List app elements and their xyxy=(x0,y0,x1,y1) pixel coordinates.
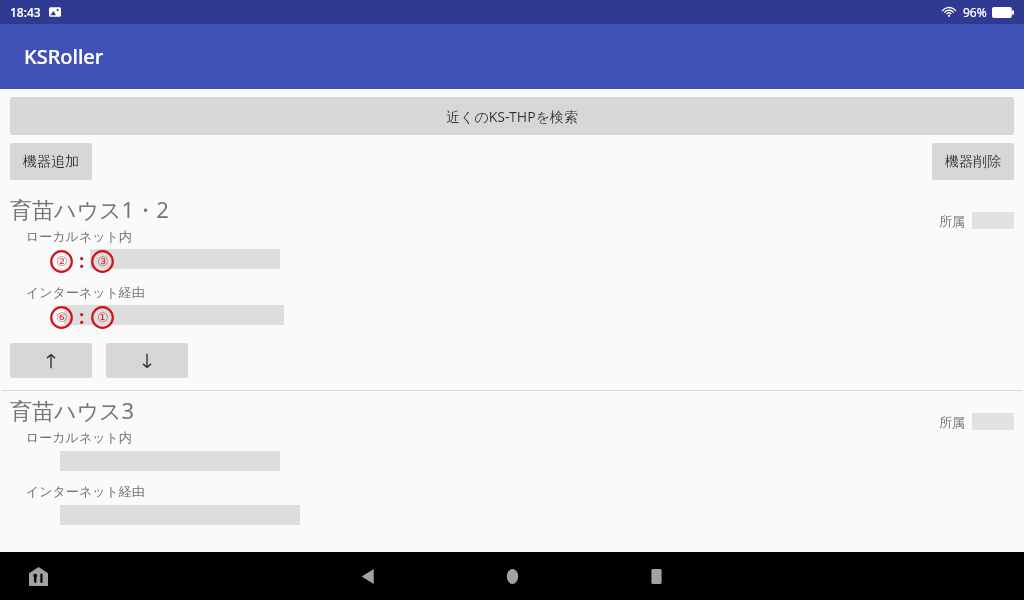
staticText: 所属 xyxy=(939,414,965,430)
button[interactable]: Recent apps xyxy=(634,554,678,598)
staticText: 機器削除 xyxy=(945,153,1001,171)
staticText: 機器追加 xyxy=(23,153,79,171)
staticText: インターネット経由 xyxy=(26,483,145,499)
button[interactable]: 機器追加 xyxy=(10,143,92,180)
button[interactable]: Home xyxy=(490,554,534,598)
button[interactable]: 近くのKS-THPを検索 xyxy=(10,97,1014,135)
staticText: : xyxy=(79,248,85,274)
button[interactable]: Move down xyxy=(106,343,188,378)
staticText: ローカルネット内 xyxy=(26,228,132,244)
staticText: : xyxy=(79,304,85,330)
staticText: 近くのKS-THPを検索 xyxy=(446,107,578,126)
staticText: ③ xyxy=(97,254,109,269)
staticText: インターネット経由 xyxy=(26,284,145,300)
button[interactable]: 育苗ハウス3 xyxy=(0,391,1024,525)
staticText: 96% xyxy=(963,4,987,20)
staticText: 育苗ハウス1・2 xyxy=(10,194,169,224)
staticText: KSRoller xyxy=(24,43,104,70)
staticText: 18:43 xyxy=(10,4,41,20)
staticText: ローカルネット内 xyxy=(26,429,132,445)
staticText: ② xyxy=(56,254,68,269)
staticText: ⑥ xyxy=(56,310,68,325)
staticText: ① xyxy=(97,310,109,325)
button[interactable]: 機器削除 xyxy=(932,143,1014,180)
staticText: 育苗ハウス3 xyxy=(10,395,135,425)
staticText: 所属 xyxy=(939,213,965,229)
button[interactable]: Move up xyxy=(10,343,92,378)
button[interactable]: Keyboard xyxy=(22,560,54,592)
button[interactable]: Back xyxy=(346,554,390,598)
button[interactable]: 育苗ハウス1・2 xyxy=(0,192,1024,390)
